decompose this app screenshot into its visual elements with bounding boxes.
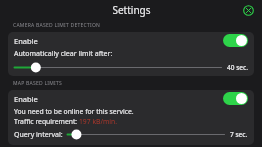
staticText: Settings: [112, 3, 151, 17]
button[interactable]: Enable: [223, 92, 248, 105]
staticText: MAP BASED LIMITS: [13, 80, 63, 87]
staticText: You need to be online for this service.: [14, 107, 134, 116]
staticText: Query interval:: [14, 130, 63, 140]
staticText: Automatically clear limit after:: [14, 49, 113, 59]
button[interactable]: Close: [238, 0, 258, 20]
staticText: Enable: [14, 94, 223, 104]
button[interactable]: Enable: [223, 34, 248, 47]
button[interactable]: Adjust value: [14, 61, 222, 74]
staticText: Enable: [14, 36, 223, 46]
button[interactable]: Enable: [8, 90, 254, 107]
staticText: 40 sec.: [227, 63, 248, 72]
staticText: 7 sec.: [230, 130, 248, 139]
staticText: Traffic requirement: 197 kB/min.: [14, 117, 118, 126]
staticText: CAMERA BASED LIMIT DETECTION: [13, 22, 101, 29]
button[interactable]: Adjust value: [67, 128, 225, 141]
button[interactable]: Enable: [8, 32, 254, 49]
